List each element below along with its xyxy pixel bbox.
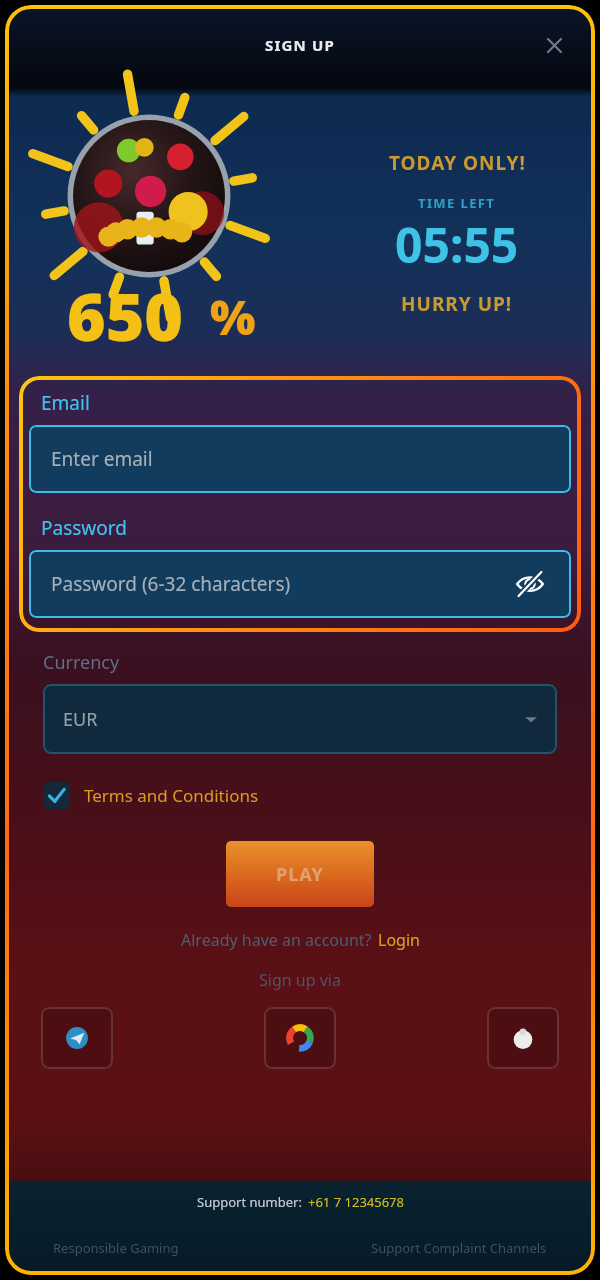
button[interactable]: Close: [537, 28, 571, 62]
button[interactable]: Sign up with Google: [264, 1007, 336, 1069]
button[interactable]: Enter email: [29, 425, 571, 493]
button[interactable]: Login: [378, 929, 420, 951]
button[interactable]: Terms and Conditions: [43, 782, 259, 809]
staticText: Enter email: [51, 446, 153, 472]
staticText: TIME LEFT: [418, 194, 496, 212]
staticText: 650: [67, 270, 184, 360]
staticText: Email: [41, 390, 90, 416]
button[interactable]: Sign up with Apple: [487, 1007, 559, 1069]
staticText: Terms and Conditions: [84, 784, 259, 807]
staticText: TODAY ONLY!: [389, 150, 526, 176]
staticText: Support Complaint Channels: [371, 1239, 547, 1257]
button[interactable]: +61 7 12345678: [308, 1193, 404, 1211]
staticText: Currency: [43, 650, 120, 675]
staticText: Sign up via: [5, 969, 595, 991]
staticText: Login: [378, 929, 420, 951]
staticText: EUR: [63, 707, 98, 732]
button[interactable]: Show password: [511, 565, 549, 603]
button[interactable]: Sign up with Telegram: [41, 1007, 113, 1069]
staticText: +61 7 12345678: [308, 1193, 404, 1211]
button[interactable]: Password (6-32 characters): [29, 550, 571, 618]
button[interactable]: Support Complaint Channels: [371, 1239, 547, 1257]
staticText: Responsible Gaming: [53, 1239, 179, 1257]
staticText: SIGN UP: [265, 35, 336, 55]
staticText: Support number:: [197, 1193, 302, 1211]
staticText: HURRY UP!: [401, 291, 513, 317]
button[interactable]: PLAY: [226, 841, 374, 907]
staticText: Password (6-32 characters): [51, 571, 291, 597]
staticText: Password: [41, 515, 127, 541]
staticText: PLAY: [276, 862, 324, 887]
button[interactable]: Responsible Gaming: [53, 1239, 179, 1257]
button[interactable]: EUR: [43, 684, 557, 754]
staticText: %: [210, 284, 256, 349]
staticText: Already have an account?: [181, 929, 372, 951]
staticText: 05:55: [395, 212, 519, 277]
